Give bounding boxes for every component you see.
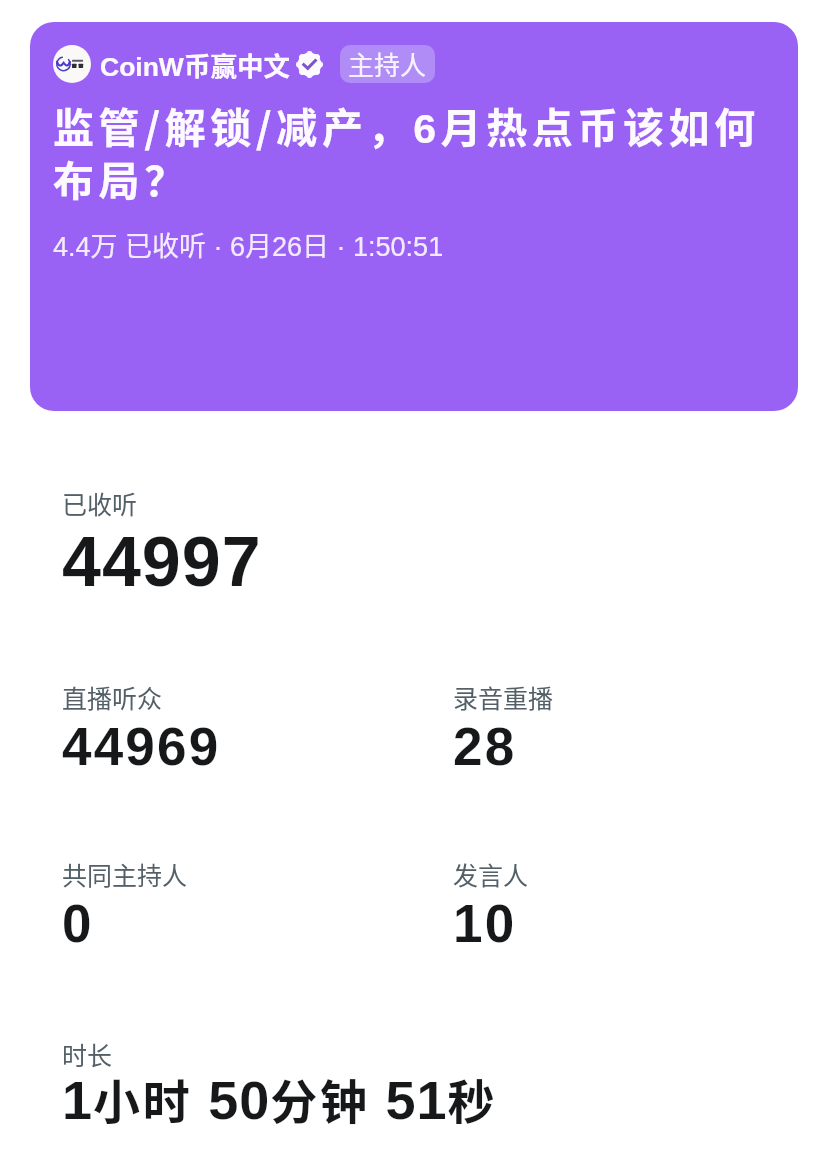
staticText: 10 [453,893,517,954]
staticText: 28 [453,716,517,777]
staticText: 主持人 [348,45,427,83]
staticText: 0 [62,893,94,954]
button[interactable]: 共同主持人 [62,863,453,954]
staticText: 4.4万 已收听 · 6月26日 · 1:50:51 [53,225,444,264]
other: Verified account [296,51,323,78]
staticText: 44997 [62,521,262,601]
button[interactable]: 直播听众 [62,686,453,777]
button[interactable]: 已收听 [62,492,262,601]
button[interactable]: 录音重播 [453,686,554,777]
button[interactable]: 时长 [62,1043,498,1132]
staticText: CoinW币赢中文 [100,45,290,83]
staticText: 发言人 [453,863,529,891]
staticText: 44969 [62,716,221,777]
staticText: 已收听 [62,492,138,520]
button[interactable]: Space: 监管/解锁/减产，6月热点币该如何布局？ [30,22,798,411]
staticText: 直播听众 [62,686,163,714]
staticText: 共同主持人 [62,863,188,891]
button[interactable]: 主持人 [340,45,435,83]
staticText: 录音重播 [453,686,554,714]
staticText: 1小时 50分钟 51秒 [62,1071,498,1132]
staticText: 监管/解锁/减产，6月热点币该如何布局？ [53,101,788,207]
staticText: 时长 [62,1043,113,1071]
button[interactable]: 发言人 [453,863,529,954]
